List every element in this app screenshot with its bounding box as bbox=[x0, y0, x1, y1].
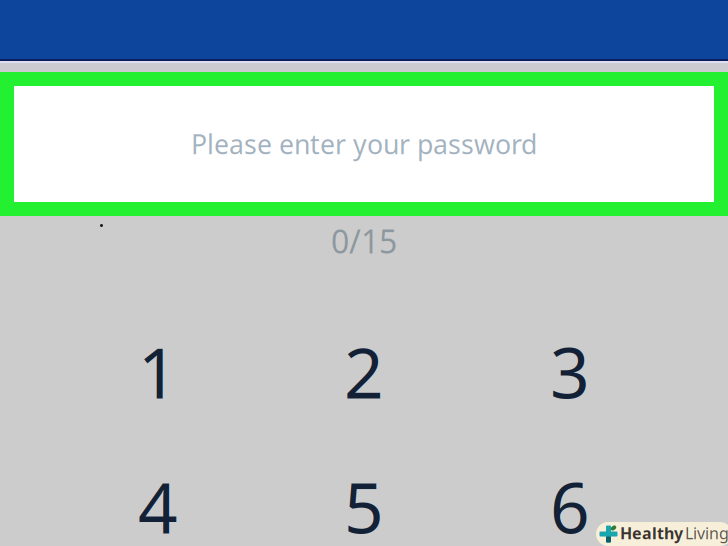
button[interactable]: 6 bbox=[467, 439, 673, 546]
staticText: 1 bbox=[138, 325, 178, 418]
staticText: 5 bbox=[344, 460, 384, 546]
staticText: 2 bbox=[344, 325, 384, 418]
staticText: 6 bbox=[550, 460, 590, 546]
staticText: Living bbox=[685, 522, 728, 544]
staticText: 4 bbox=[138, 460, 178, 546]
button[interactable]: Please enter your password bbox=[14, 86, 714, 202]
staticText: Please enter your password bbox=[191, 126, 537, 162]
staticText: 3 bbox=[550, 325, 590, 418]
button[interactable]: 2 bbox=[261, 304, 467, 439]
button[interactable]: 5 bbox=[261, 439, 467, 546]
staticText: 0/15 bbox=[331, 220, 397, 262]
staticText: Healthy bbox=[620, 522, 683, 544]
button[interactable]: 1 bbox=[55, 304, 261, 439]
button[interactable]: 3 bbox=[467, 304, 673, 439]
button[interactable]: 4 bbox=[55, 439, 261, 546]
